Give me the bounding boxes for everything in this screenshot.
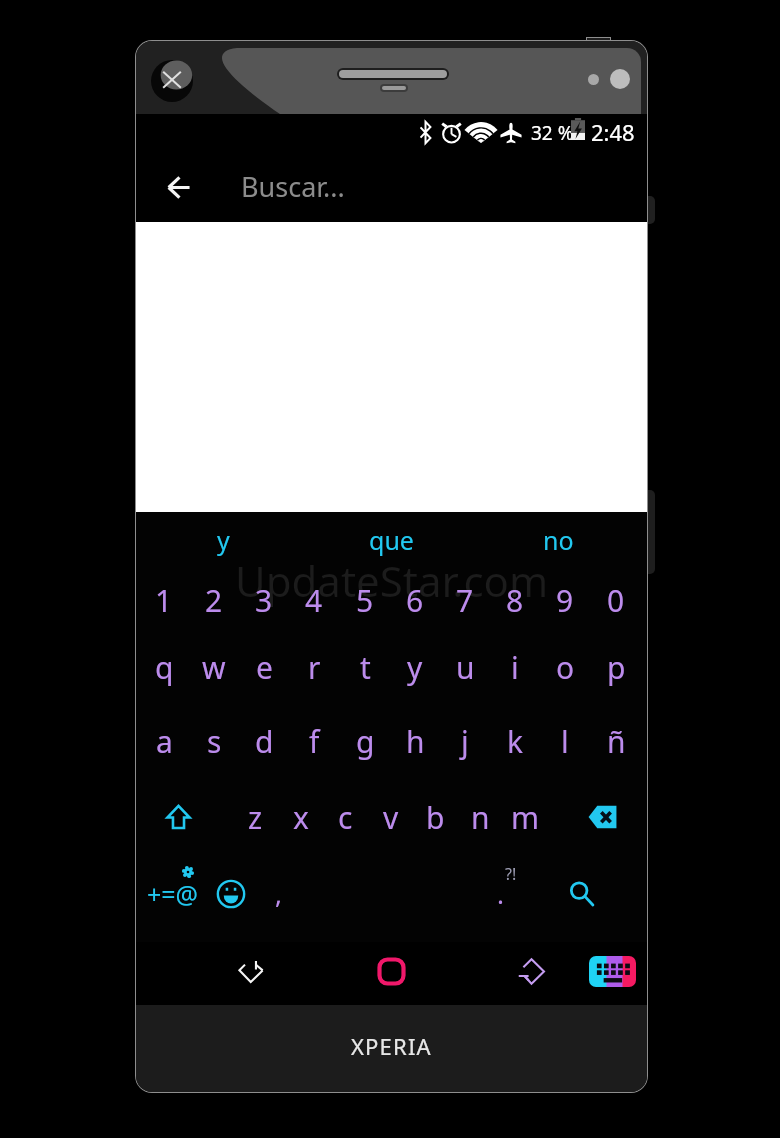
button[interactable]: 6 (390, 566, 440, 634)
button[interactable]: k (490, 707, 540, 775)
staticText: i (511, 647, 519, 688)
button[interactable]: y (153, 514, 293, 566)
button[interactable]: y (390, 633, 440, 701)
staticText: 2:48 (591, 117, 635, 147)
staticText: v (383, 797, 399, 838)
staticText: d (255, 721, 274, 762)
button[interactable]: 9 (540, 566, 590, 634)
button[interactable]: 4 (289, 566, 339, 634)
staticText: s (207, 721, 222, 762)
button[interactable]: Home (361, 941, 421, 1001)
staticText: u (456, 647, 475, 688)
staticText: b (426, 797, 445, 838)
staticText: f (309, 721, 320, 762)
staticText: w (202, 647, 226, 688)
button[interactable]: u (440, 633, 490, 701)
button[interactable]: x (278, 783, 323, 851)
staticText: , (275, 876, 282, 911)
staticText: z (248, 797, 263, 838)
button[interactable]: o (540, 633, 590, 701)
staticText: 3 (255, 580, 273, 621)
button[interactable]: 1 (139, 566, 189, 634)
button[interactable]: Recents (501, 941, 561, 1001)
staticText: +=@ (147, 877, 199, 911)
button[interactable]: , (254, 857, 300, 925)
button[interactable]: p (591, 633, 641, 701)
button[interactable]: ñ (591, 707, 641, 775)
staticText: e (256, 647, 273, 688)
button[interactable]: 8 (490, 566, 540, 634)
button[interactable]: e (239, 633, 289, 701)
button[interactable]: Back (150, 158, 208, 216)
staticText: q (155, 647, 174, 688)
staticText: 4 (305, 580, 323, 621)
staticText: 7 (456, 580, 474, 621)
staticText: 0 (607, 580, 625, 621)
button[interactable]: t (340, 633, 390, 701)
button[interactable]: 2 (189, 566, 239, 634)
button[interactable]: no (488, 514, 628, 566)
button[interactable]: Keyboard (582, 941, 642, 1001)
button[interactable]: 0 (591, 566, 641, 634)
staticText: x (293, 797, 309, 838)
staticText: 9 (556, 580, 574, 621)
button[interactable]: g (340, 707, 390, 775)
button[interactable]: 7 (440, 566, 490, 634)
button[interactable]: w (189, 633, 239, 701)
button[interactable]: Shift (144, 783, 212, 851)
button[interactable]: n (458, 783, 503, 851)
button[interactable]: c (323, 783, 368, 851)
staticText: o (556, 647, 575, 688)
button[interactable]: i (490, 633, 540, 701)
staticText: y (407, 647, 423, 688)
button[interactable]: Search (536, 857, 626, 925)
staticText: a (156, 721, 173, 762)
button[interactable]: f (289, 707, 339, 775)
staticText: 5 (356, 580, 374, 621)
button[interactable]: 5 (340, 566, 390, 634)
button[interactable]: m (503, 783, 548, 851)
staticText: ?! (505, 863, 517, 885)
button[interactable]: +=@ (136, 857, 210, 925)
staticText: n (471, 797, 490, 838)
staticText: l (561, 721, 569, 762)
button[interactable]: Emoji (202, 857, 258, 925)
button[interactable]: j (440, 707, 490, 775)
staticText: k (507, 721, 524, 762)
button[interactable]: v (368, 783, 413, 851)
staticText: j (461, 721, 469, 762)
staticText: que (369, 523, 414, 557)
staticText: 32 % (531, 120, 574, 146)
button[interactable]: d (239, 707, 289, 775)
staticText: h (406, 721, 425, 762)
button[interactable]: Back (221, 941, 281, 1001)
button[interactable]: a (139, 707, 189, 775)
button[interactable]: r (289, 633, 339, 701)
button[interactable]: . (468, 857, 534, 925)
button[interactable]: 3 (239, 566, 289, 634)
staticText: m (511, 797, 540, 838)
staticText: 1 (155, 580, 173, 621)
button[interactable]: h (390, 707, 440, 775)
staticText: r (308, 647, 321, 688)
button[interactable]: Backspace (568, 783, 636, 851)
button[interactable]: b (413, 783, 458, 851)
staticText: no (543, 523, 574, 557)
staticText: y (217, 523, 230, 557)
button[interactable]: que (321, 514, 461, 566)
staticText: t (360, 647, 371, 688)
button[interactable]: z (233, 783, 278, 851)
staticText: g (356, 721, 375, 762)
button[interactable]: l (540, 707, 590, 775)
staticText: . (497, 876, 504, 911)
staticText: c (338, 797, 353, 838)
button[interactable]: q (139, 633, 189, 701)
staticText: XPERIA (351, 1031, 432, 1061)
staticText: UpdateStar.com (235, 552, 549, 609)
button[interactable]: s (189, 707, 239, 775)
staticText: ñ (607, 721, 626, 762)
button[interactable]: Close (151, 60, 193, 102)
staticText: Buscar... (241, 168, 345, 205)
staticText: 8 (506, 580, 524, 621)
